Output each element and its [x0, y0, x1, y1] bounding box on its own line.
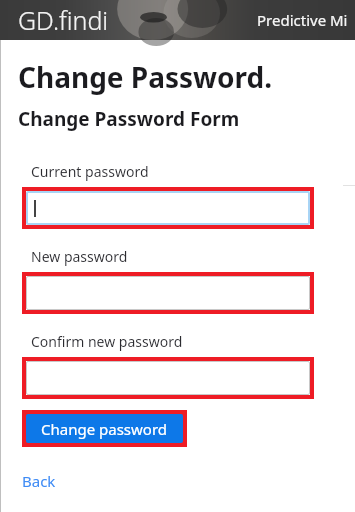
staticText: GD.findi: [18, 3, 109, 37]
staticText: Change Password Form: [18, 106, 240, 132]
staticText: Predictive Mi: [257, 10, 348, 30]
staticText: Change password: [41, 419, 168, 439]
button[interactable]: [26, 361, 310, 395]
button[interactable]: [26, 191, 310, 225]
button[interactable]: [26, 276, 310, 310]
button[interactable]: Back: [22, 471, 56, 491]
staticText: New password: [31, 247, 128, 266]
staticText: Back: [22, 471, 56, 491]
staticText: Change Password.: [18, 58, 273, 96]
staticText: Current password: [31, 162, 149, 181]
button[interactable]: Change password: [26, 414, 183, 443]
staticText: Confirm new password: [31, 332, 183, 351]
